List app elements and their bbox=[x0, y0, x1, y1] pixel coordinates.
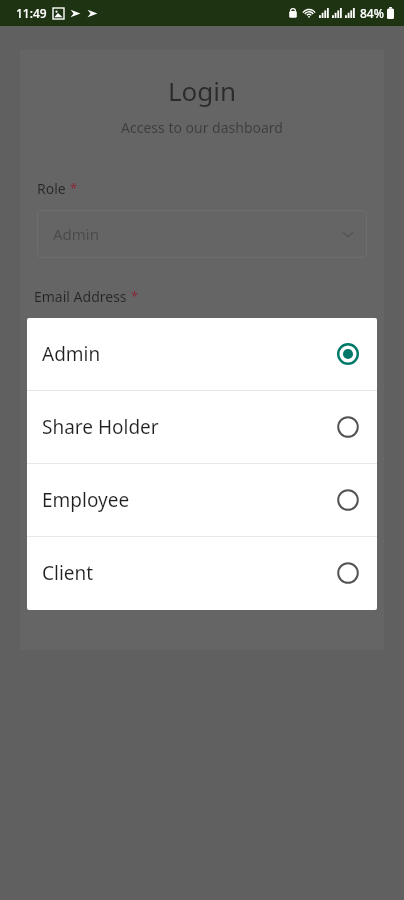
staticText: Share Holder bbox=[42, 414, 159, 440]
staticText: Employee bbox=[42, 487, 130, 513]
staticText: Admin bbox=[53, 224, 99, 244]
staticText: Access to our dashboard bbox=[20, 118, 384, 137]
button[interactable]: Employee bbox=[27, 464, 377, 536]
button[interactable]: Client bbox=[27, 537, 377, 609]
button[interactable]: Share Holder bbox=[27, 391, 377, 463]
staticText: Login bbox=[20, 73, 384, 108]
staticText: 84% bbox=[360, 5, 384, 21]
staticText: Client bbox=[42, 560, 94, 586]
staticText: 11:49 bbox=[16, 5, 47, 21]
staticText: Admin bbox=[42, 341, 101, 367]
staticText: * bbox=[70, 179, 78, 197]
staticText: Email Address bbox=[34, 287, 127, 306]
staticText: * bbox=[131, 287, 139, 305]
staticText: Role bbox=[37, 179, 66, 198]
button[interactable]: Admin bbox=[27, 318, 377, 390]
